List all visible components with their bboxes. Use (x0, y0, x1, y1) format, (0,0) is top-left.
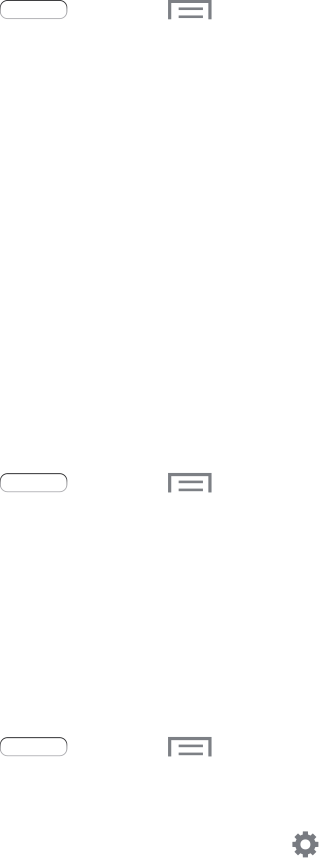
button[interactable]: Option (0, 473, 67, 492)
button[interactable]: Settings (291, 830, 319, 858)
button[interactable]: Layout (168, 737, 212, 756)
button[interactable]: Layout (168, 473, 212, 492)
button[interactable]: Option (0, 0, 67, 19)
button[interactable]: Layout (168, 0, 212, 19)
button[interactable]: Option (0, 737, 67, 756)
